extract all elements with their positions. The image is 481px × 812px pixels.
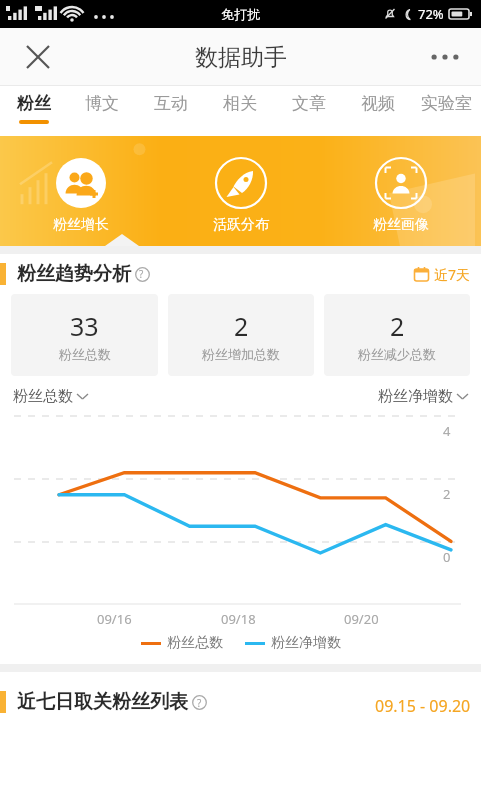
staticText: 33 (70, 309, 99, 343)
staticText: 粉丝净增数 (378, 387, 453, 406)
staticText: 粉丝净增数 (271, 634, 341, 652)
staticText: 粉丝总数 (59, 346, 111, 362)
staticText: ? (197, 696, 202, 710)
button[interactable]: 粉丝增长 (0, 149, 161, 234)
button[interactable]: 活跃分布 (161, 149, 321, 234)
staticText: 视频 (361, 93, 395, 114)
staticText: 09/18 (221, 610, 256, 628)
button[interactable]: 粉丝画像 (321, 149, 481, 234)
staticText: 粉丝总数 (13, 387, 73, 406)
staticText: 实验室 (421, 93, 472, 114)
button[interactable]: 2 (168, 294, 314, 376)
staticText: 2 (234, 309, 249, 343)
staticText: 09.15 - 09.20 (375, 695, 471, 717)
button[interactable]: 博文 (68, 86, 136, 136)
staticText: 互动 (154, 93, 188, 114)
staticText: 粉丝增加总数 (202, 346, 280, 362)
button[interactable]: 实验室 (412, 86, 481, 136)
button[interactable]: 文章 (274, 86, 343, 136)
staticText: 4 (443, 422, 451, 440)
staticText: 粉丝 (17, 93, 51, 114)
staticText: 粉丝增长 (53, 216, 109, 234)
staticText: 博文 (85, 93, 119, 114)
button[interactable]: 粉丝总数 (13, 387, 88, 406)
staticText: 2 (443, 485, 451, 503)
button[interactable]: More options (423, 35, 467, 79)
staticText: 0 (443, 548, 451, 566)
staticText: 免打扰 (221, 6, 260, 22)
staticText: 相关 (223, 93, 257, 114)
staticText: 粉丝减少总数 (358, 346, 436, 362)
button[interactable]: 视频 (343, 86, 412, 136)
button[interactable]: 粉丝净增数 (378, 387, 468, 406)
button[interactable]: 2 (324, 294, 470, 376)
staticText: 粉丝画像 (373, 216, 429, 234)
staticText: 09/16 (97, 610, 132, 628)
button[interactable]: 相关 (205, 86, 274, 136)
staticText: 72% (418, 5, 444, 23)
button[interactable]: 近7天 (414, 265, 471, 284)
staticText: 近七日取关粉丝列表 (17, 690, 188, 714)
staticText: 2 (390, 309, 405, 343)
staticText: ? (139, 267, 144, 281)
staticText: 文章 (292, 93, 326, 114)
staticText: 粉丝总数 (167, 634, 223, 652)
staticText: 近7天 (434, 265, 471, 284)
staticText: 粉丝趋势分析 (17, 262, 131, 286)
button[interactable]: 33 (11, 294, 158, 376)
staticText: 活跃分布 (213, 216, 269, 234)
staticText: 数据助手 (195, 43, 287, 72)
button[interactable]: 粉丝总数 (141, 634, 223, 652)
button[interactable]: 互动 (136, 86, 205, 136)
button[interactable]: Close (18, 37, 58, 77)
staticText: 09/20 (344, 610, 379, 628)
button[interactable]: 粉丝 (0, 86, 68, 136)
button[interactable]: 粉丝净增数 (245, 634, 341, 652)
